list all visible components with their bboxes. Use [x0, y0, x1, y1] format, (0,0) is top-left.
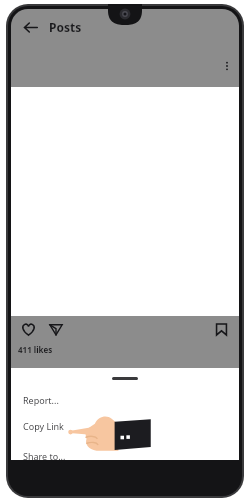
button[interactable]: Back	[17, 14, 43, 40]
staticText: Share to...	[23, 450, 66, 460]
staticText: Report...	[23, 394, 59, 406]
staticText: Posts	[49, 19, 82, 35]
button[interactable]: Share	[44, 317, 68, 341]
button[interactable]: More options	[217, 56, 237, 76]
staticText: 411 likes	[18, 344, 53, 355]
button[interactable]: Save	[209, 317, 233, 341]
button[interactable]: Share to...	[11, 450, 239, 460]
staticText: Copy Link	[23, 420, 64, 432]
button[interactable]: Copy Link	[11, 418, 239, 434]
button[interactable]: Like	[16, 317, 40, 341]
button[interactable]: Report...	[11, 392, 239, 408]
